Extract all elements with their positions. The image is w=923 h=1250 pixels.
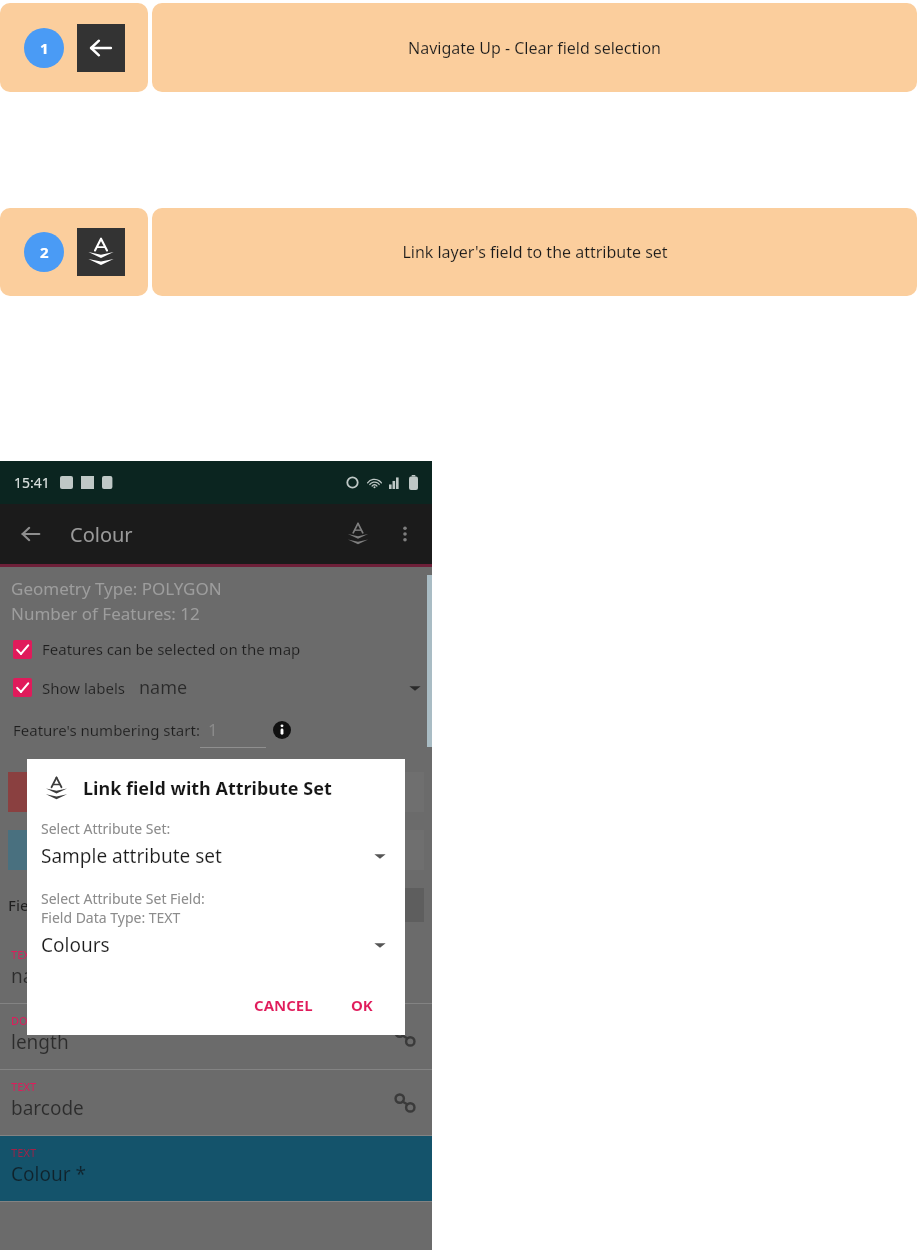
staticText: name <box>11 963 62 989</box>
button[interactable]: TEXT <box>0 938 432 1003</box>
button[interactable]: Add <box>8 830 38 870</box>
button[interactable]: DOUBLE <box>0 1004 432 1069</box>
button[interactable]: OK <box>343 989 381 1021</box>
staticText: barcode <box>11 1095 84 1121</box>
staticText: TEXT <box>11 1145 37 1160</box>
button[interactable]: Attribute set <box>340 516 376 552</box>
button[interactable] <box>394 772 424 812</box>
button[interactable]: TEXT <box>0 1070 432 1135</box>
staticText: Features can be selected on the map <box>42 639 301 659</box>
button[interactable]: TEXT <box>0 1136 432 1201</box>
button[interactable]: Info <box>272 720 292 740</box>
staticText: Colour <box>70 521 133 548</box>
staticText: 2 <box>40 242 49 262</box>
button[interactable]: 1 <box>0 3 148 92</box>
other: Link layer field <box>77 228 125 276</box>
button[interactable]: Colours <box>41 932 391 958</box>
button[interactable] <box>394 888 424 922</box>
staticText: Colours <box>41 932 110 958</box>
button[interactable]: Back <box>14 517 48 551</box>
button[interactable]: 2 <box>0 208 148 296</box>
button[interactable]: CANCEL <box>246 989 321 1021</box>
staticText: Select Attribute Set Field: <box>41 889 205 908</box>
staticText: Sample attribute set <box>41 843 222 869</box>
staticText: 1 <box>208 718 218 741</box>
button[interactable] <box>394 830 424 870</box>
staticText: length <box>11 1029 69 1055</box>
staticText: CANCEL <box>254 995 313 1015</box>
other: Navigate Up <box>77 24 125 72</box>
staticText: TEXT <box>11 947 37 962</box>
staticText: Link layer's field to the attribute set <box>402 241 668 263</box>
button[interactable]: Sample attribute set <box>41 843 391 869</box>
staticText: Link field with Attribute Set <box>83 776 332 801</box>
button[interactable]: Show labels <box>13 675 422 700</box>
staticText: Field Data Type: TEXT <box>41 908 181 927</box>
button[interactable]: More options <box>390 519 420 549</box>
staticText: Navigate Up - Clear field selection <box>408 37 661 59</box>
staticText: TEXT <box>11 1079 37 1094</box>
staticText: name <box>139 675 188 700</box>
staticText: 1 <box>40 38 49 58</box>
button[interactable]: Features can be selected on the map <box>13 639 432 659</box>
staticText: 15:41 <box>14 473 50 492</box>
button[interactable]: Link layer's field to the attribute set <box>152 208 917 296</box>
staticText: Feature's numbering start: <box>13 720 200 740</box>
staticText: Select Attribute Set: <box>41 819 171 838</box>
staticText: Colour * <box>11 1161 86 1187</box>
staticText: DOUBLE <box>11 1013 55 1028</box>
button[interactable]: Delete <box>8 772 38 812</box>
staticText: Show labels <box>42 678 125 698</box>
button[interactable]: Navigate Up - Clear field selection <box>152 3 917 92</box>
staticText: Number of Features: 12 <box>11 602 200 625</box>
staticText: Fie <box>8 895 29 915</box>
other: Linked <box>392 1024 418 1050</box>
staticText: Geometry Type: POLYGON <box>11 577 222 600</box>
other: Linked <box>392 1090 418 1116</box>
staticText: OK <box>351 995 373 1015</box>
